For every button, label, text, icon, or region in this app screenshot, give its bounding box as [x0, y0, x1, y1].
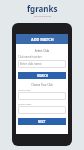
staticText: SEARCH	[37, 74, 48, 78]
button[interactable]: ADD MATCH	[16, 34, 68, 44]
staticText: fgranks	[27, 3, 58, 14]
staticText: ADD MATCH	[31, 37, 54, 42]
button[interactable]	[18, 92, 66, 100]
button[interactable]: Enter club name	[18, 60, 66, 68]
staticText: Club name/number	[18, 55, 42, 59]
button[interactable]: SEARCH	[18, 72, 66, 79]
staticText: ONLINE RANKING	[34, 15, 51, 18]
button[interactable]: NEXT	[18, 118, 66, 125]
staticText: Select Team	[18, 102, 32, 105]
staticText: Enter club name	[20, 62, 42, 66]
button[interactable]	[18, 106, 66, 114]
staticText: Select Club	[18, 49, 66, 53]
staticText: Select Club	[18, 88, 31, 91]
staticText: NEXT	[38, 120, 46, 124]
staticText: Choose Your Club	[18, 83, 66, 87]
